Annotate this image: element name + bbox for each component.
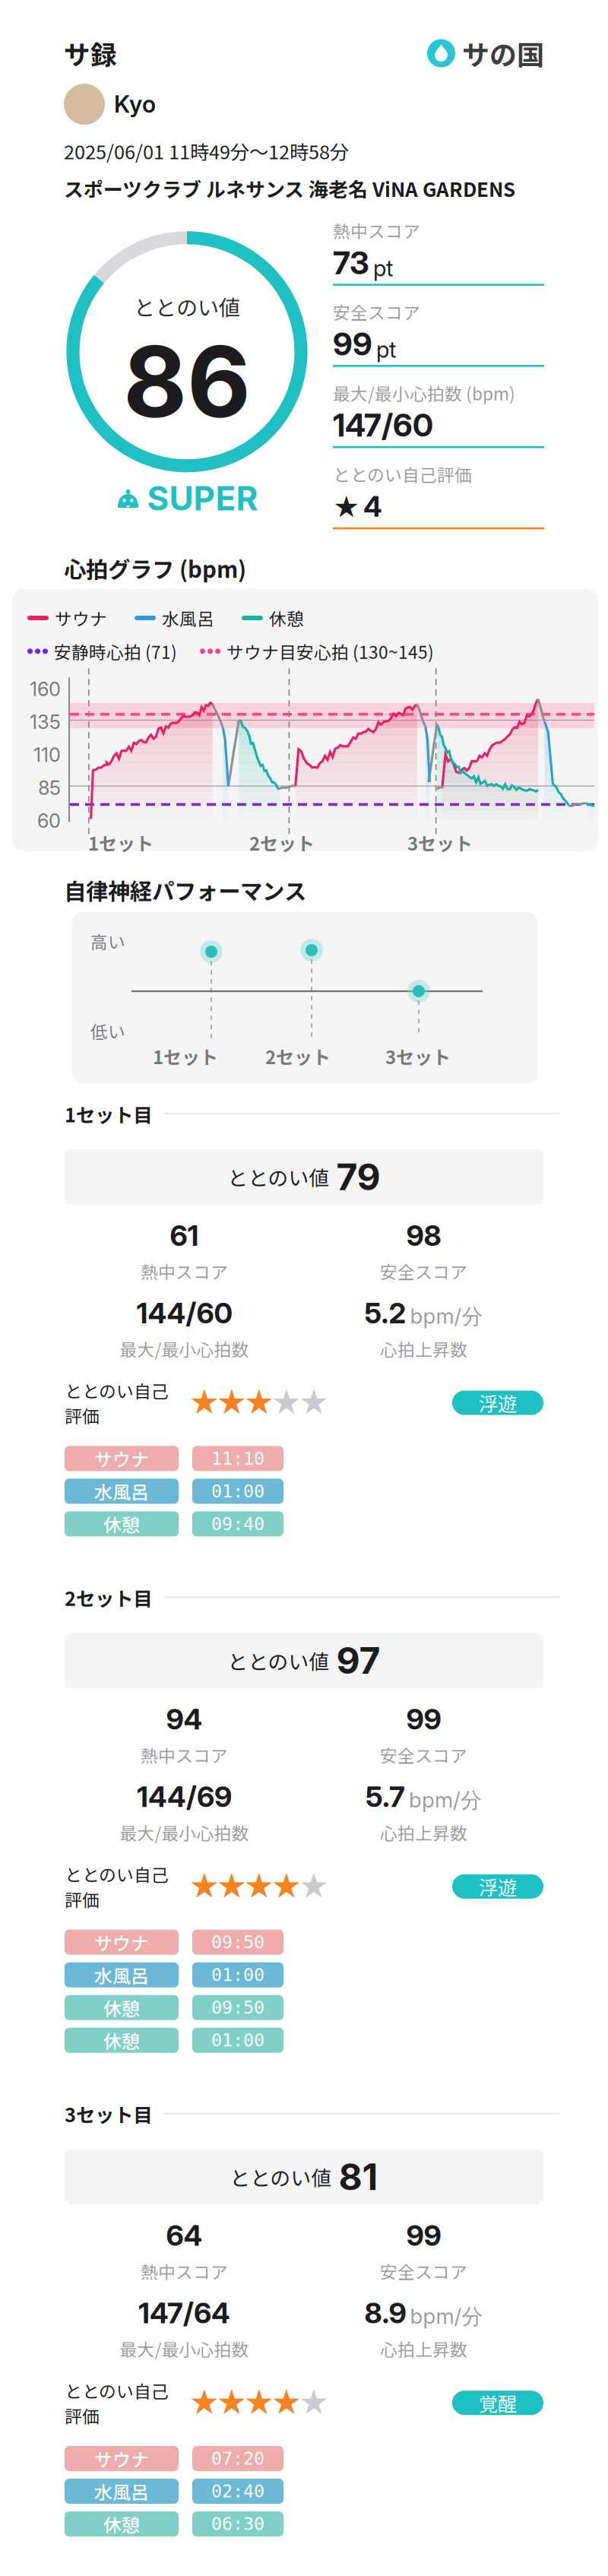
staticText: 64	[166, 2218, 203, 2253]
staticText: pt	[373, 255, 393, 282]
staticText: 水風呂	[94, 1478, 149, 1504]
staticText: ★	[216, 2384, 247, 2421]
staticText: サウナ	[94, 1929, 149, 1955]
staticText: bpm/分	[409, 1787, 482, 1814]
staticText: 自律神経パフォーマンス	[64, 874, 306, 906]
staticText: ★	[189, 2384, 220, 2421]
staticText: 94	[166, 1702, 203, 1736]
staticText: ととのい自己評価	[65, 2378, 169, 2428]
staticText: 07:20	[211, 2448, 264, 2469]
staticText: 心拍上昇数	[380, 1820, 467, 1845]
button[interactable]: サの国	[427, 33, 544, 73]
staticText: 144/60	[136, 1296, 232, 1330]
staticText: ★	[244, 1868, 275, 1905]
staticText: ととのい値	[230, 2162, 332, 2192]
staticText: 心拍上昇数	[380, 2336, 467, 2361]
staticText: SUPER	[147, 478, 258, 518]
staticText: 4	[363, 489, 382, 523]
staticText: 110	[33, 743, 61, 767]
staticText: bpm/分	[410, 1303, 483, 1330]
staticText: 安全スコア	[380, 1742, 467, 1767]
staticText: 水風呂	[94, 2478, 149, 2504]
staticText: サ録	[64, 34, 117, 72]
staticText: 浮遊	[479, 1873, 517, 1900]
staticText: 86	[123, 322, 251, 441]
staticText: 98	[406, 1218, 441, 1253]
staticText: サウナ	[55, 606, 107, 630]
staticText: 01:00	[211, 1965, 264, 1985]
button[interactable]: 覚醒	[452, 2391, 543, 2415]
staticText: ととのい値	[228, 1162, 329, 1191]
staticText: ★	[244, 1384, 275, 1421]
staticText: ★	[333, 492, 359, 523]
staticText: ★	[271, 1384, 302, 1421]
staticText: 2025/06/01 11時49分〜12時58分	[64, 137, 349, 165]
staticText: 97	[336, 1638, 380, 1683]
staticText: 09:50	[211, 1932, 264, 1953]
staticText: 1セット	[88, 829, 154, 856]
button[interactable]: 浮遊	[452, 1874, 543, 1899]
staticText: 09:40	[211, 1514, 264, 1534]
staticText: 144/69	[137, 1779, 232, 1814]
staticText: 06:30	[211, 2514, 264, 2534]
staticText: 61	[170, 1218, 199, 1253]
staticText: ととのい値	[134, 291, 240, 322]
staticText: 休憩	[103, 2027, 140, 2054]
staticText: サウナ	[94, 1445, 149, 1472]
staticText: サウナ	[94, 2445, 149, 2472]
staticText: 147/64	[138, 2296, 230, 2330]
staticText: 1セット目	[65, 1100, 152, 1128]
staticText: 60	[37, 809, 61, 832]
staticText: 休憩	[269, 606, 304, 630]
staticText: 最大/最小心拍数 (bpm)	[333, 380, 515, 405]
staticText: ととのい値	[228, 1646, 329, 1675]
staticText: 1セット	[153, 1043, 218, 1069]
staticText: ★	[244, 2384, 275, 2421]
button[interactable]: 浮遊	[452, 1391, 543, 1415]
staticText: ★	[271, 2384, 302, 2421]
staticText: 覚醒	[479, 2389, 517, 2417]
staticText: Kyo	[114, 90, 156, 118]
staticText: 99	[406, 1702, 441, 1736]
staticText: ★	[189, 1384, 220, 1421]
staticText: bpm/分	[410, 2303, 483, 2330]
staticText: 休憩	[103, 1511, 140, 1537]
staticText: ★	[189, 1868, 220, 1905]
staticText: 147/60	[333, 406, 433, 444]
staticText: ★	[216, 1384, 247, 1421]
staticText: 浮遊	[479, 1389, 517, 1417]
staticText: ととのい自己評価	[65, 1862, 169, 1911]
staticText: 01:00	[211, 1481, 264, 1502]
staticText: 73	[333, 244, 369, 282]
staticText: 79	[336, 1155, 380, 1199]
staticText: 09:50	[211, 1997, 264, 2018]
staticText: 2セット	[265, 1043, 331, 1069]
staticText: 01:00	[211, 2030, 264, 2051]
staticText: 5.7	[366, 1779, 405, 1814]
staticText: 135	[30, 710, 61, 734]
staticText: 最大/最小心拍数	[120, 2336, 249, 2361]
staticText: ★	[298, 1384, 329, 1421]
staticText: 安静時心拍 (71)	[54, 639, 177, 664]
staticText: 水風呂	[94, 1962, 149, 1988]
staticText: 81	[339, 2155, 378, 2199]
staticText: 熱中スコア	[333, 218, 420, 243]
staticText: 熱中スコア	[141, 1742, 228, 1767]
staticText: 休憩	[103, 1994, 140, 2021]
staticText: 3セット目	[65, 2100, 152, 2128]
staticText: 安全スコア	[380, 1259, 467, 1284]
staticText: 02:40	[211, 2481, 264, 2502]
staticText: 熱中スコア	[141, 2259, 228, 2284]
staticText: 最大/最小心拍数	[120, 1820, 249, 1845]
staticText: ととのい自己評価	[333, 462, 472, 487]
staticText: 心拍グラフ (bpm)	[64, 552, 246, 584]
staticText: 高い	[90, 929, 125, 953]
staticText: 水風呂	[162, 606, 214, 630]
staticText: ととのい自己評価	[65, 1378, 169, 1428]
staticText: 11:10	[211, 1448, 264, 1469]
staticText: 心拍上昇数	[380, 1336, 467, 1361]
staticText: 安全スコア	[380, 2259, 467, 2284]
staticText: 3セット	[407, 829, 473, 856]
staticText: 8.9	[364, 2296, 406, 2330]
staticText: ★	[271, 1868, 302, 1905]
